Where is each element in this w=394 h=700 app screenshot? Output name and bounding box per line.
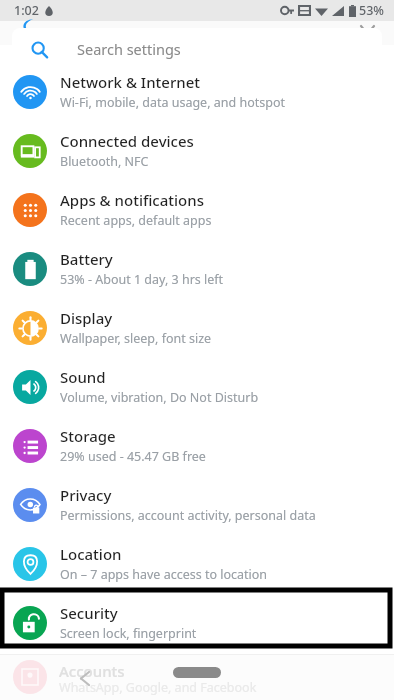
staticText: Volume, vibration, Do Not Disturb	[60, 389, 259, 406]
staticText: Accounts	[59, 661, 125, 681]
staticText: Search settings	[77, 39, 181, 59]
button[interactable]: Battery	[0, 239, 394, 298]
staticText: Bluetooth, NFC	[60, 153, 149, 170]
staticText: Screen lock, fingerprint	[60, 625, 197, 642]
staticText: Wallpaper, sleep, font size	[60, 330, 212, 347]
staticText: Storage	[60, 426, 116, 446]
staticText: Sound	[60, 367, 106, 387]
button[interactable]: Apps & notifications	[0, 180, 394, 239]
staticText: Network & Internet	[60, 72, 201, 92]
button[interactable]: Location	[0, 534, 394, 593]
staticText: Security	[60, 603, 118, 623]
staticText: Permissions, account activity, personal …	[60, 507, 316, 524]
button[interactable]: Search settings	[12, 28, 382, 70]
staticText: Privacy	[60, 485, 112, 505]
staticText: Display	[60, 308, 113, 328]
staticText: Location	[60, 544, 122, 564]
button[interactable]: Back	[70, 663, 100, 693]
button[interactable]: Sound	[0, 357, 394, 416]
staticText: On – 7 apps have access to location	[60, 566, 268, 583]
button[interactable]: Network & Internet	[0, 62, 394, 121]
staticText: 29% used - 45.47 GB free	[60, 448, 206, 465]
staticText: Wi-Fi, mobile, data usage, and hotspot	[60, 94, 285, 111]
staticText: Battery	[60, 249, 113, 269]
button[interactable]: Home	[173, 667, 221, 678]
staticText: 53%	[359, 2, 384, 19]
staticText: 1:02	[14, 2, 39, 19]
staticText: WhatsApp, Google, and Facebook	[59, 679, 257, 696]
button[interactable]: Security	[0, 593, 394, 652]
button[interactable]: Display	[0, 298, 394, 357]
button[interactable]: Connected devices	[0, 121, 394, 180]
staticText: Apps & notifications	[60, 190, 204, 210]
staticText: Recent apps, default apps	[60, 212, 212, 229]
staticText: 53% - About 1 day, 3 hrs left	[60, 271, 224, 288]
button[interactable]: Storage	[0, 416, 394, 475]
button[interactable]: Privacy	[0, 475, 394, 534]
staticText: Connected devices	[60, 131, 194, 151]
